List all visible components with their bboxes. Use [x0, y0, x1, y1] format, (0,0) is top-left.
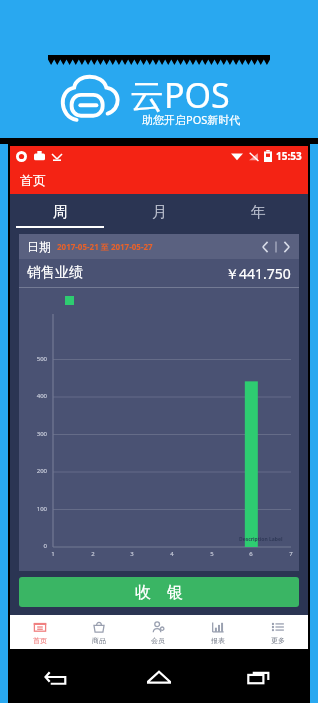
button[interactable]: 首页 [10, 615, 69, 649]
staticText: 首页 [20, 172, 46, 188]
staticText: 7 [285, 550, 297, 558]
staticText: ￥441.750 [225, 264, 291, 283]
button[interactable]: 更多 [248, 615, 308, 649]
button[interactable]: Back [8, 651, 108, 703]
staticText: 500 [25, 355, 47, 363]
staticText: 云POS [130, 72, 230, 118]
button[interactable]: 周 [10, 194, 110, 230]
button[interactable]: 收 银 [19, 577, 299, 607]
staticText: 5 [206, 550, 218, 558]
button[interactable]: 日期 [27, 234, 291, 259]
other: Previous and next period [261, 239, 291, 255]
staticText: 首页 [33, 636, 47, 645]
staticText: 0 [25, 542, 47, 550]
staticText: 收 银 [135, 581, 183, 603]
button[interactable]: 报表 [188, 615, 248, 649]
staticText: 300 [25, 430, 47, 438]
staticText: 3 [126, 550, 138, 558]
staticText: 日期 [27, 239, 51, 254]
button[interactable]: 会员 [128, 615, 188, 649]
staticText: 200 [25, 467, 47, 475]
staticText: 400 [25, 392, 47, 400]
staticText: 100 [25, 505, 47, 513]
staticText: 6 [245, 550, 257, 558]
staticText: 更多 [271, 636, 285, 645]
staticText: 周 [53, 203, 68, 222]
staticText: 销售业绩 [27, 264, 83, 282]
staticText: 报表 [211, 636, 225, 645]
staticText: 商品 [92, 636, 106, 645]
staticText: 4 [166, 550, 178, 558]
staticText: 年 [251, 203, 266, 222]
button[interactable]: 月 [110, 194, 209, 230]
button[interactable]: 商品 [69, 615, 128, 649]
staticText: 2017-05-21 至 2017-05-27 [57, 241, 153, 252]
staticText: 会员 [151, 636, 165, 645]
staticText: 2 [87, 550, 99, 558]
staticText: 1 [47, 550, 59, 558]
staticText: Description Label [239, 536, 283, 543]
button[interactable]: 年 [209, 194, 308, 230]
staticText: 15:53 [276, 149, 302, 163]
staticText: 助您开启POS新时代 [142, 112, 241, 127]
staticText: 月 [152, 203, 167, 222]
button[interactable]: Recent apps [209, 651, 310, 703]
button[interactable]: Home [108, 651, 209, 703]
